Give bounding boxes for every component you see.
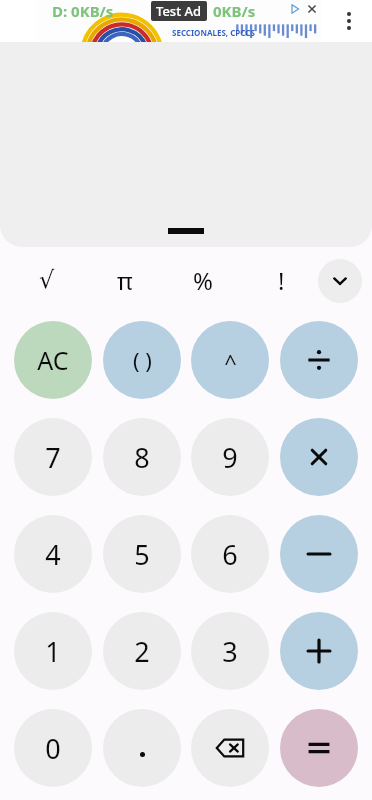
button[interactable]: 3 xyxy=(191,612,269,690)
button[interactable]: Advertisement xyxy=(36,0,322,42)
button[interactable]: More options xyxy=(338,6,360,36)
staticText: AC xyxy=(37,343,69,377)
staticText: D: 0KB/s xyxy=(52,1,114,21)
button[interactable]: Percent xyxy=(180,257,226,303)
button[interactable]: Close ad xyxy=(306,3,318,15)
button[interactable]: Multiply xyxy=(280,418,358,496)
staticText: 9 xyxy=(222,439,238,476)
staticText: 0 xyxy=(45,730,61,767)
staticText: Test Ad xyxy=(156,2,202,20)
staticText: 0KB/s xyxy=(213,1,256,21)
staticText: 4 xyxy=(45,536,61,573)
staticText: π xyxy=(117,264,133,297)
button[interactable]: 9 xyxy=(191,418,269,496)
button[interactable]: 1 xyxy=(14,612,92,690)
staticText: 6 xyxy=(222,536,238,573)
button[interactable]: Pi xyxy=(102,257,148,303)
button[interactable]: 7 xyxy=(14,418,92,496)
staticText: 8 xyxy=(134,439,150,476)
button[interactable]: ( ) xyxy=(103,321,181,399)
button[interactable]: Expand functions xyxy=(318,259,362,303)
staticText: 2 xyxy=(134,633,150,670)
staticText: ^ xyxy=(224,347,237,377)
button[interactable]: 5 xyxy=(103,515,181,593)
button[interactable]: Drag handle xyxy=(0,42,372,247)
button[interactable]: Ad choices xyxy=(289,3,301,15)
staticText: √ xyxy=(39,266,55,294)
button[interactable]: Divide xyxy=(280,321,358,399)
button[interactable]: 0 xyxy=(14,709,92,787)
staticText: ! xyxy=(278,264,285,297)
button[interactable]: Plus xyxy=(280,612,358,690)
button[interactable]: Factorial xyxy=(258,257,304,303)
button[interactable]: AC xyxy=(14,321,92,399)
staticText: 3 xyxy=(222,633,238,670)
staticText: SECCIONALES, CPCCS xyxy=(172,27,255,38)
staticText: 1 xyxy=(45,633,61,670)
button[interactable]: Square root xyxy=(24,257,70,303)
button[interactable]: 6 xyxy=(191,515,269,593)
staticText: % xyxy=(193,264,213,297)
button[interactable]: 4 xyxy=(14,515,92,593)
staticText: ( ) xyxy=(133,345,152,375)
button[interactable]: Backspace xyxy=(191,709,269,787)
staticText: 7 xyxy=(45,439,61,476)
button[interactable]: 2 xyxy=(103,612,181,690)
button[interactable]: ^ xyxy=(191,321,269,399)
staticText: 5 xyxy=(134,536,150,573)
button[interactable]: Equals xyxy=(280,709,358,787)
button[interactable]: 8 xyxy=(103,418,181,496)
button[interactable]: Minus xyxy=(280,515,358,593)
button[interactable]: Decimal point xyxy=(103,709,181,787)
